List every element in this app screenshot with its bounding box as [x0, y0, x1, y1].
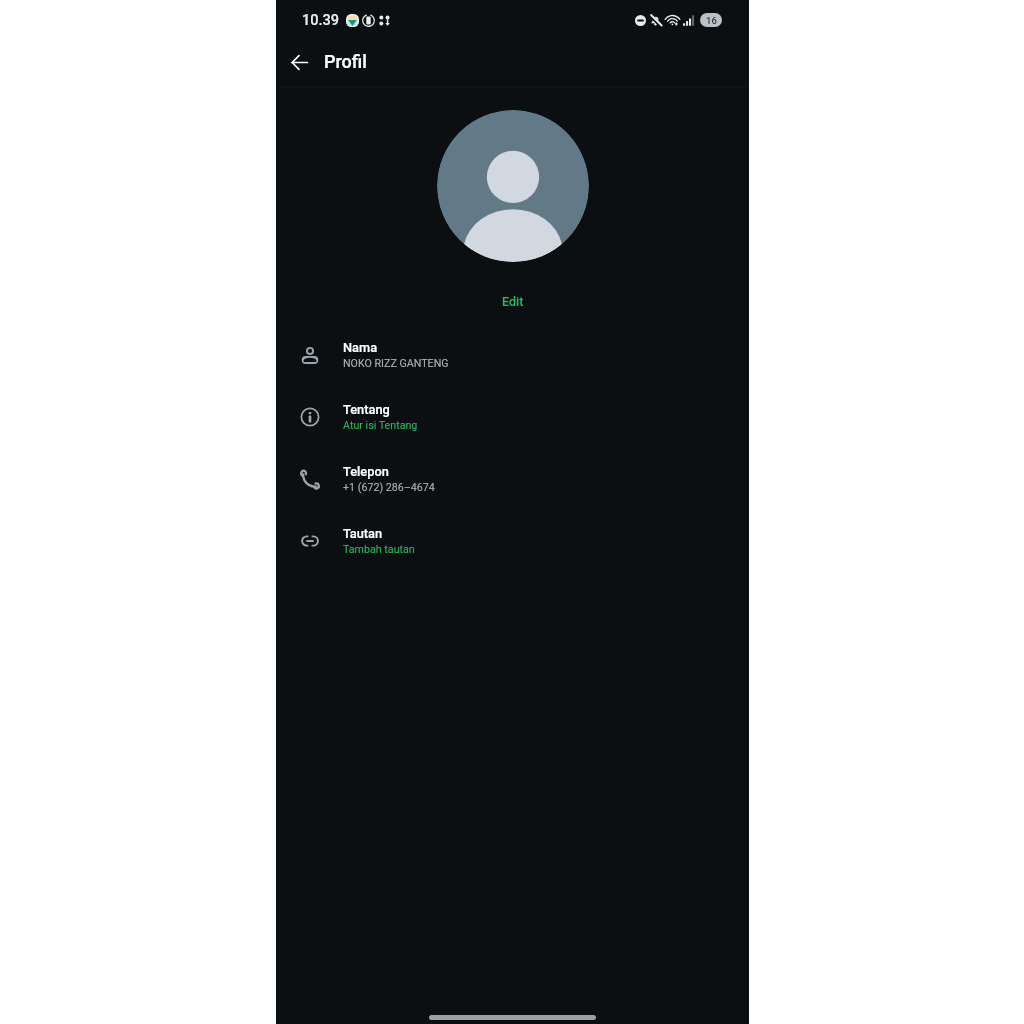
staticText: 16	[706, 15, 717, 26]
staticText: +1 (672) 286–4674	[343, 481, 435, 494]
button[interactable]: Edit	[486, 291, 540, 312]
staticText: Nama	[343, 340, 378, 355]
staticText: Tautan	[343, 526, 383, 541]
staticText: NOKO RIZZ GANTENG	[343, 357, 449, 370]
button[interactable]: Tautan	[276, 510, 749, 572]
button[interactable]: Nama	[276, 324, 749, 386]
staticText: Tentang	[343, 402, 390, 417]
button[interactable]: Profile photo	[437, 110, 589, 262]
button[interactable]: Telepon	[276, 448, 749, 510]
staticText: Telepon	[343, 464, 389, 479]
staticText: Edit	[502, 294, 524, 309]
button[interactable]: Tentang	[276, 386, 749, 448]
staticText: 10.39	[302, 12, 340, 29]
staticText: Atur isi Tentang	[343, 419, 418, 432]
staticText: Profil	[324, 51, 367, 72]
button[interactable]: Back	[280, 43, 318, 81]
staticText: Tambah tautan	[343, 543, 415, 556]
